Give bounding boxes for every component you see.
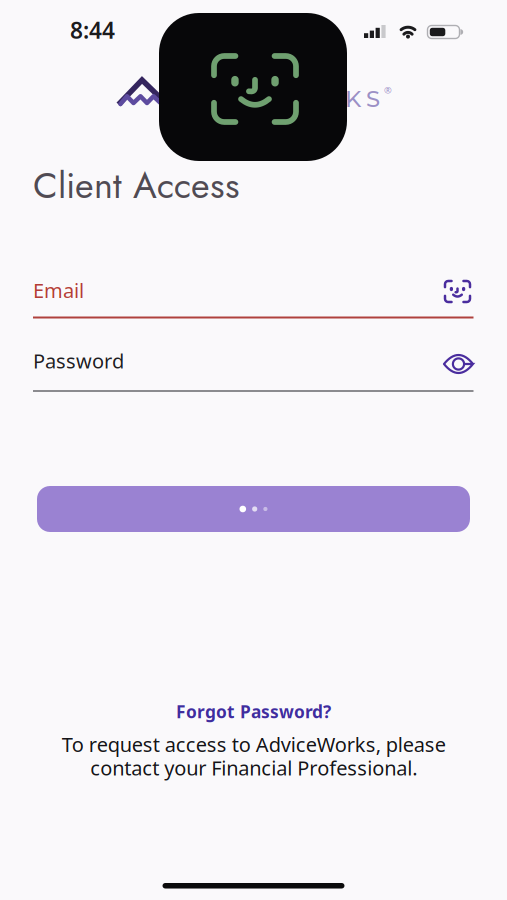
button[interactable]: Sign in with Face ID	[438, 274, 478, 310]
staticText: Password	[33, 347, 124, 374]
staticText: Forgot Password?	[176, 700, 331, 723]
button[interactable]: Show password	[438, 350, 479, 380]
staticText: To request access to AdviceWorks, please…	[61, 731, 445, 781]
staticText: ®	[384, 84, 392, 96]
button[interactable]: Forgot Password?	[176, 700, 331, 723]
staticText: KS	[345, 85, 380, 113]
staticText: Client Access	[33, 159, 240, 211]
button[interactable]: Sign In	[37, 486, 470, 532]
staticText: Email	[33, 277, 84, 304]
staticText: 8:44	[70, 15, 115, 45]
